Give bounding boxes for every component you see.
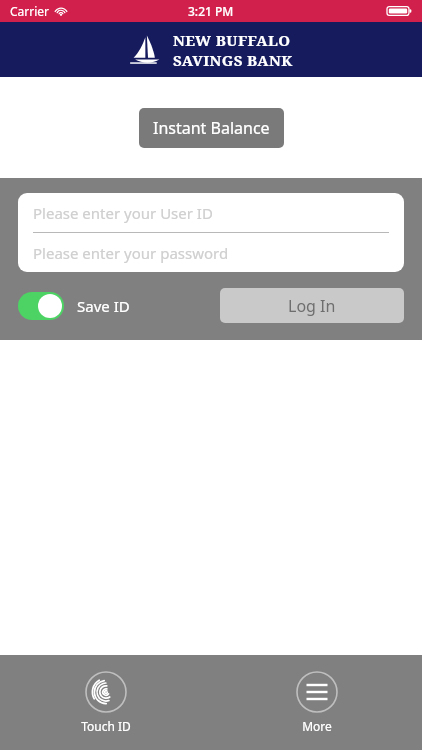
- staticText: SAVINGS BANK: [173, 50, 293, 70]
- other: More: [296, 671, 338, 713]
- staticText: Carrier: [10, 3, 50, 19]
- button[interactable]: Please enter your User ID: [18, 193, 404, 232]
- button[interactable]: Log In: [220, 288, 404, 323]
- staticText: Touch ID: [81, 718, 131, 734]
- staticText: Please enter your User ID: [33, 203, 213, 223]
- staticText: 3:21 PM: [188, 3, 234, 19]
- staticText: More: [302, 718, 332, 734]
- staticText: NEW BUFFALO: [173, 30, 291, 50]
- staticText: Log In: [288, 295, 336, 317]
- button[interactable]: Please enter your password: [18, 233, 404, 272]
- staticText: Save ID: [77, 296, 130, 316]
- button[interactable]: Instant Balance: [139, 108, 284, 148]
- other: Touch ID: [85, 671, 127, 713]
- staticText: Instant Balance: [153, 117, 270, 139]
- button[interactable]: More: [292, 667, 342, 738]
- button[interactable]: Save ID toggle: [18, 292, 64, 320]
- staticText: Please enter your password: [33, 243, 229, 263]
- button[interactable]: Touch ID: [77, 667, 135, 738]
